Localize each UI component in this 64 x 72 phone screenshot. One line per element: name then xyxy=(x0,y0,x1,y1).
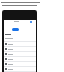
button[interactable] xyxy=(4,62,36,66)
button[interactable] xyxy=(12,28,19,31)
button[interactable] xyxy=(4,67,36,71)
button[interactable] xyxy=(4,47,36,51)
button[interactable] xyxy=(4,57,36,61)
button[interactable] xyxy=(4,42,36,46)
button[interactable] xyxy=(4,52,36,56)
